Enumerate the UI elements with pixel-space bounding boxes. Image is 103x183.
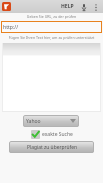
- staticText: exakte Suche: [42, 131, 73, 138]
- button[interactable]: Yahoo: [23, 115, 79, 127]
- staticText: Plagiat zu überprüfen: [27, 144, 77, 151]
- button[interactable]: exakte Suche: [31, 130, 73, 139]
- button[interactable]: App logo: [2, 2, 11, 11]
- button[interactable]: Voice search: [78, 1, 90, 13]
- staticText: http://: [3, 24, 19, 31]
- button[interactable]: [2, 43, 101, 112]
- button[interactable]: http://: [1, 21, 102, 33]
- staticText: HELP: [61, 3, 74, 10]
- button[interactable]: Plagiat zu überprüfen: [9, 141, 94, 153]
- staticText: Fügen Sie Ihren Text hier, um zu prüfen …: [0, 35, 103, 40]
- staticText: Yahoo: [26, 118, 41, 125]
- button[interactable]: HELP: [61, 3, 74, 10]
- staticText: Geben Sie URL, zu der prüfen: [0, 14, 103, 19]
- button[interactable]: More options: [90, 1, 102, 13]
